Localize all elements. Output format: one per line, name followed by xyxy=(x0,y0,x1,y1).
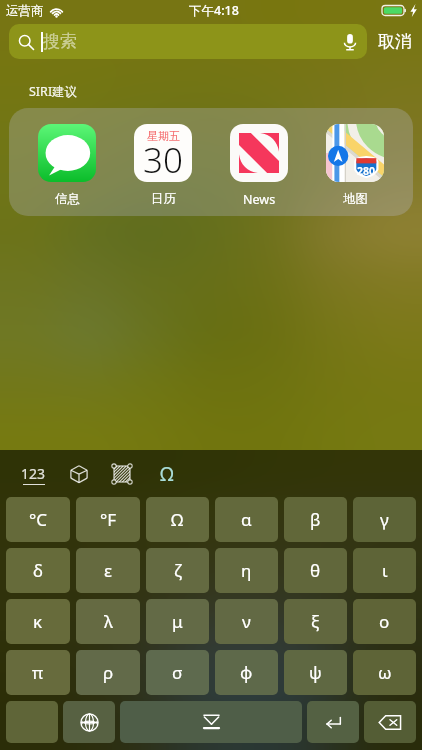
staticText: ξ xyxy=(311,610,320,633)
staticText: 30 xyxy=(143,136,183,175)
button[interactable]: η xyxy=(215,548,278,593)
button[interactable]: Delete xyxy=(364,701,416,743)
button[interactable]: Symbols xyxy=(153,460,181,488)
staticText: θ xyxy=(310,559,321,582)
staticText: 地图 xyxy=(343,191,368,207)
staticText: ο xyxy=(379,610,390,633)
staticText: α xyxy=(241,508,252,531)
staticText: γ xyxy=(380,508,389,531)
staticText: °C xyxy=(29,508,48,531)
button[interactable]: γ xyxy=(353,497,416,542)
staticText: ν xyxy=(242,610,251,633)
button[interactable]: ο xyxy=(353,599,416,644)
button[interactable]: Ω xyxy=(146,497,209,542)
button[interactable]: β xyxy=(284,497,347,542)
staticText: ε xyxy=(104,559,112,582)
button[interactable]: φ xyxy=(215,650,278,695)
staticText: 运营商 xyxy=(6,3,44,19)
staticText: ψ xyxy=(309,661,322,684)
staticText: π xyxy=(32,661,44,684)
button[interactable]: Patterns xyxy=(108,460,136,488)
staticText: φ xyxy=(240,661,253,684)
staticText: 123 xyxy=(21,464,46,483)
staticText: σ xyxy=(172,661,183,684)
button[interactable]: Change keyboard xyxy=(63,701,115,743)
button[interactable]: ε xyxy=(76,548,140,593)
staticText: 280 xyxy=(357,164,376,178)
staticText: β xyxy=(310,508,321,531)
staticText: ρ xyxy=(103,661,114,684)
staticText: Ω xyxy=(160,461,174,487)
staticText: κ xyxy=(33,610,43,633)
button[interactable]: ζ xyxy=(146,548,209,593)
staticText: °F xyxy=(100,508,117,531)
button[interactable]: 信息 xyxy=(19,108,115,216)
button[interactable]: μ xyxy=(146,599,209,644)
button[interactable]: ξ xyxy=(284,599,347,644)
button[interactable]: θ xyxy=(284,548,347,593)
staticText: μ xyxy=(172,610,183,633)
staticText: 信息 xyxy=(55,191,80,207)
button[interactable]: News xyxy=(211,108,307,216)
button[interactable]: ι xyxy=(353,548,416,593)
staticText: ι xyxy=(382,559,388,582)
staticText: ω xyxy=(378,661,392,684)
button[interactable]: °F xyxy=(76,497,140,542)
staticText: δ xyxy=(33,559,43,582)
button[interactable]: Numbers xyxy=(18,458,48,490)
button[interactable]: Hide keyboard xyxy=(120,701,302,743)
button[interactable]: 280 xyxy=(307,108,403,216)
button[interactable]: α xyxy=(215,497,278,542)
staticText: News xyxy=(243,191,276,208)
button[interactable]: 星期五 xyxy=(115,108,211,216)
button[interactable]: Voice search xyxy=(336,28,364,56)
button[interactable]: δ xyxy=(6,548,70,593)
button[interactable]: ρ xyxy=(76,650,140,695)
button[interactable]: π xyxy=(6,650,70,695)
button[interactable]: 搜索 xyxy=(9,24,367,59)
staticText: 星期五 xyxy=(147,129,180,143)
button[interactable]: 取消 xyxy=(367,21,422,61)
button[interactable]: Return xyxy=(307,701,359,743)
staticText: 下午4:18 xyxy=(189,2,239,19)
button[interactable]: κ xyxy=(6,599,70,644)
staticText: SIRI建议 xyxy=(29,83,78,100)
staticText: 搜索 xyxy=(43,31,77,52)
button[interactable]: 3D objects xyxy=(65,460,93,488)
button[interactable]: °C xyxy=(6,497,70,542)
staticText: Ω xyxy=(171,508,184,531)
staticText: 取消 xyxy=(378,31,412,52)
staticText: ζ xyxy=(174,559,182,582)
button[interactable]: Shift xyxy=(6,701,58,743)
button[interactable]: ω xyxy=(353,650,416,695)
staticText: 日历 xyxy=(151,191,176,207)
button[interactable]: σ xyxy=(146,650,209,695)
button[interactable]: λ xyxy=(76,599,140,644)
staticText: η xyxy=(241,559,252,582)
staticText: λ xyxy=(104,610,113,633)
button[interactable]: ψ xyxy=(284,650,347,695)
button[interactable]: ν xyxy=(215,599,278,644)
